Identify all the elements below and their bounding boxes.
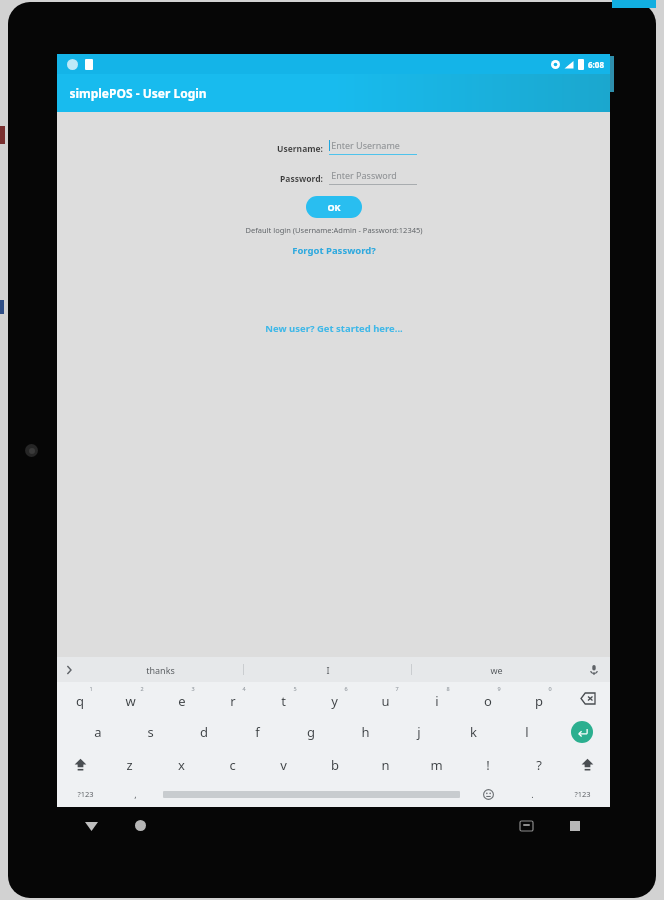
button[interactable]: j xyxy=(392,715,446,748)
staticText: x xyxy=(178,756,185,774)
button[interactable]: q xyxy=(57,682,107,715)
button[interactable]: d xyxy=(177,715,230,748)
staticText: b xyxy=(331,756,339,774)
button[interactable]: u xyxy=(362,682,413,715)
staticText: 9 xyxy=(497,685,501,692)
button[interactable]: h xyxy=(338,715,392,748)
button[interactable]: I xyxy=(244,657,412,682)
button[interactable]: l xyxy=(500,715,554,748)
staticText: Enter Password xyxy=(331,169,397,181)
staticText: o xyxy=(484,692,492,710)
button[interactable]: ! xyxy=(462,748,513,781)
button[interactable]: Enter Password xyxy=(329,168,417,185)
button[interactable]: Voice input xyxy=(586,662,602,678)
staticText: OK xyxy=(327,201,341,213)
button[interactable]: New user? Get started here... xyxy=(259,320,409,337)
button[interactable]: z xyxy=(103,748,155,781)
staticText: e xyxy=(178,692,186,710)
button[interactable]: Back xyxy=(78,813,104,839)
button[interactable]: x xyxy=(155,748,207,781)
staticText: s xyxy=(147,723,154,741)
button[interactable]: b xyxy=(309,748,360,781)
staticText: u xyxy=(381,692,390,710)
staticText: 3 xyxy=(191,685,195,692)
staticText: , xyxy=(134,788,137,800)
staticText: 6:08 xyxy=(588,59,604,70)
button[interactable]: p xyxy=(515,682,566,715)
button[interactable]: ? xyxy=(513,748,564,781)
button[interactable]: simplePOS - User Login xyxy=(57,74,610,112)
button[interactable]: r xyxy=(209,682,260,715)
button[interactable]: , xyxy=(113,781,157,807)
button[interactable]: Expand suggestions xyxy=(61,662,77,678)
staticText: Password: xyxy=(280,173,323,185)
staticText: 1 xyxy=(89,685,93,692)
button[interactable]: ?123 xyxy=(57,781,113,807)
button[interactable]: Shift xyxy=(57,748,103,781)
button[interactable]: Forgot Password? xyxy=(286,242,382,259)
staticText: Username: xyxy=(277,143,323,155)
button[interactable]: ?123 xyxy=(554,781,610,807)
staticText: 8 xyxy=(446,685,450,692)
button[interactable]: Shift xyxy=(564,748,610,781)
staticText: thanks xyxy=(146,664,175,676)
staticText: p xyxy=(535,692,543,710)
staticText: r xyxy=(230,692,236,710)
button[interactable]: g xyxy=(284,715,338,748)
button[interactable]: w xyxy=(107,682,158,715)
staticText: k xyxy=(470,723,477,741)
button[interactable]: Enter xyxy=(554,715,610,748)
staticText: 7 xyxy=(395,685,399,692)
staticText: 5 xyxy=(293,685,297,692)
staticText: m xyxy=(430,756,443,774)
staticText: 2 xyxy=(140,685,144,692)
staticText: ? xyxy=(536,756,542,774)
staticText: q xyxy=(76,692,84,710)
staticText: ! xyxy=(486,756,490,774)
button[interactable]: v xyxy=(258,748,309,781)
button[interactable]: Emoji xyxy=(466,781,510,807)
staticText: I xyxy=(326,664,330,676)
button[interactable]: Backspace xyxy=(566,682,610,715)
button[interactable]: c xyxy=(207,748,258,781)
button[interactable]: s xyxy=(124,715,177,748)
button[interactable]: y xyxy=(311,682,362,715)
button[interactable]: t xyxy=(260,682,311,715)
staticText: g xyxy=(307,723,315,741)
staticText: 4 xyxy=(242,685,246,692)
staticText: Default login (Username:Admin - Password… xyxy=(245,225,423,235)
button[interactable]: Enter Username xyxy=(329,138,417,155)
button[interactable]: Space xyxy=(163,781,460,807)
staticText: j xyxy=(417,723,421,741)
button[interactable]: OK xyxy=(306,196,362,218)
staticText: n xyxy=(381,756,390,774)
button[interactable]: . xyxy=(510,781,554,807)
staticText: New user? Get started here... xyxy=(265,322,403,335)
button[interactable]: Switch keyboard xyxy=(513,813,539,839)
staticText: l xyxy=(525,723,529,741)
staticText: 0 xyxy=(548,685,552,692)
button[interactable]: a xyxy=(71,715,124,748)
button[interactable]: Recent apps xyxy=(562,813,588,839)
staticText: a xyxy=(94,723,102,741)
staticText: w xyxy=(125,692,136,710)
staticText: t xyxy=(281,692,286,710)
staticText: d xyxy=(200,723,208,741)
staticText: ?123 xyxy=(77,789,94,799)
button[interactable]: k xyxy=(446,715,500,748)
staticText: . xyxy=(531,788,534,800)
button[interactable]: e xyxy=(158,682,209,715)
staticText: 6 xyxy=(344,685,348,692)
button[interactable]: Home xyxy=(127,812,153,838)
button[interactable]: f xyxy=(230,715,284,748)
button[interactable]: n xyxy=(360,748,411,781)
button[interactable]: i xyxy=(413,682,464,715)
button[interactable]: we xyxy=(412,657,580,682)
button[interactable]: thanks xyxy=(77,657,244,682)
button[interactable]: o xyxy=(464,682,515,715)
staticText: ?123 xyxy=(574,789,591,799)
staticText: Forgot Password? xyxy=(292,244,376,257)
staticText: z xyxy=(126,756,133,774)
staticText: Enter Username xyxy=(331,139,400,151)
button[interactable]: m xyxy=(411,748,462,781)
